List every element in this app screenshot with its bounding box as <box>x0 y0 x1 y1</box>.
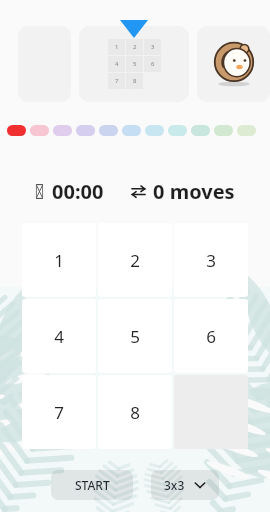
button[interactable]: 1 <box>79 26 189 102</box>
button[interactable]: 3 <box>174 223 248 297</box>
staticText: 7 <box>54 401 64 424</box>
button[interactable]: 7 <box>22 375 96 449</box>
staticText: 5 <box>133 60 137 68</box>
staticText: 1 <box>54 249 64 272</box>
staticText: 2 <box>130 249 140 272</box>
button[interactable]: START <box>51 470 133 500</box>
staticText: 5 <box>130 325 140 348</box>
staticText: 6 <box>151 60 155 68</box>
staticText: 4 <box>54 325 64 348</box>
button[interactable]: Theme colour 8 <box>168 125 187 136</box>
button[interactable]: 3x3 <box>151 470 219 500</box>
button[interactable]: Theme colour 2 <box>30 125 49 136</box>
staticText: 7 <box>115 77 119 85</box>
staticText: 3x3 <box>164 477 185 493</box>
button[interactable]: Theme colour 5 <box>99 125 118 136</box>
button[interactable]: 1 <box>22 223 96 297</box>
staticText: 6 <box>206 325 216 348</box>
staticText: 0 moves <box>153 178 235 205</box>
button[interactable]: 4 <box>22 299 96 373</box>
button[interactable]: Theme colour 9 <box>191 125 210 136</box>
button[interactable]: 8 <box>98 375 172 449</box>
button[interactable]: Theme colour 4 <box>76 125 95 136</box>
button[interactable]: Lion picture puzzle <box>197 26 270 102</box>
button[interactable]: 5 <box>98 299 172 373</box>
button[interactable]: Theme colour 10 <box>214 125 233 136</box>
staticText: 8 <box>133 77 137 85</box>
button[interactable]: Theme colour 1 <box>7 125 26 136</box>
staticText: 3 <box>206 249 216 272</box>
button[interactable]: 6 <box>174 299 248 373</box>
staticText: 00:00 <box>52 178 104 205</box>
staticText: 1 <box>115 43 119 51</box>
button[interactable]: Theme colour 3 <box>53 125 72 136</box>
button[interactable]: Theme colour 6 <box>122 125 141 136</box>
button[interactable]: 2 <box>98 223 172 297</box>
staticText: START <box>75 477 110 493</box>
staticText: 8 <box>130 401 140 424</box>
staticText: 3 <box>151 43 155 51</box>
staticText: 2 <box>133 43 137 51</box>
button[interactable]: Theme colour 7 <box>145 125 164 136</box>
button[interactable]: Theme colour 11 <box>237 125 256 136</box>
staticText: 4 <box>115 60 119 68</box>
